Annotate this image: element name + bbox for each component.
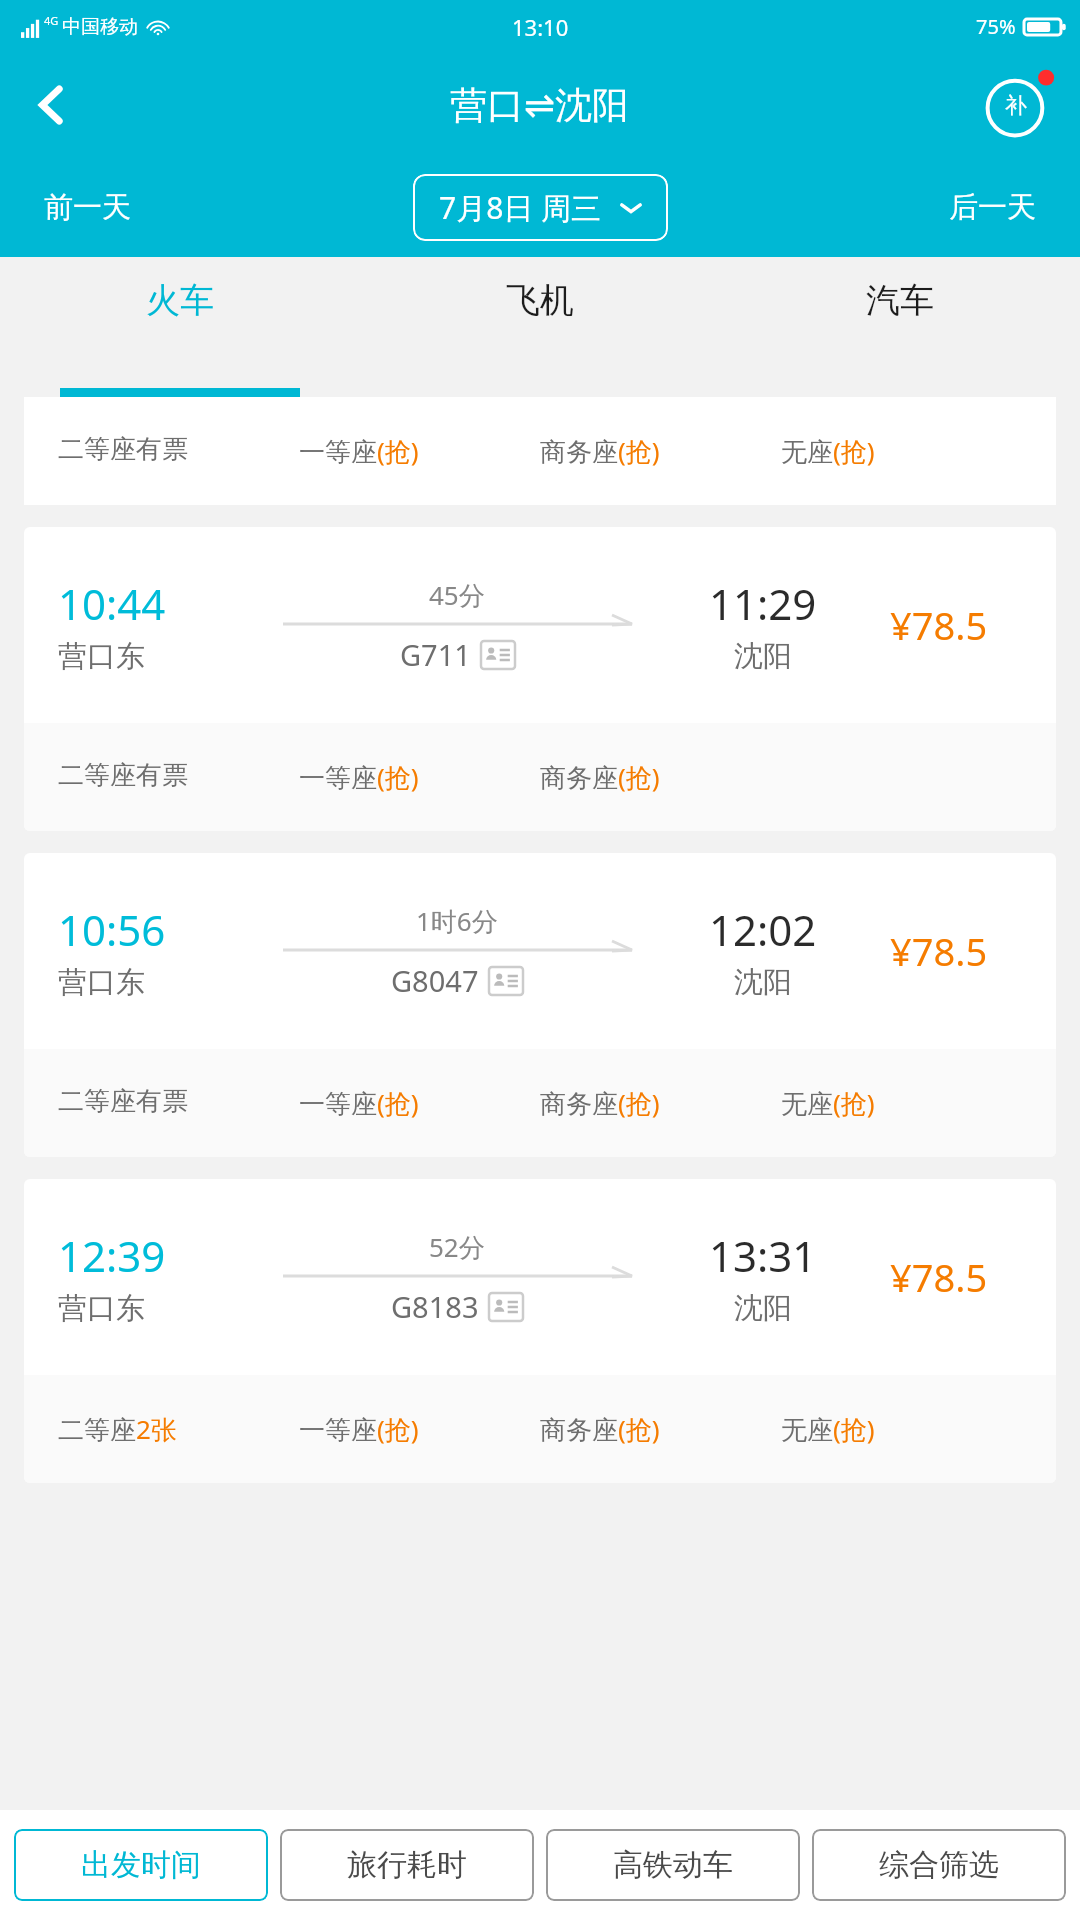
staticText: 75% <box>976 13 1016 40</box>
staticText: 沈阳 <box>734 1290 792 1327</box>
button[interactable]: 综合筛选 <box>812 1829 1066 1901</box>
staticText: 1时6分 <box>416 903 498 939</box>
button[interactable]: 火车 <box>0 257 360 397</box>
staticText: 火车 <box>146 279 214 322</box>
staticText: 综合筛选 <box>879 1846 999 1884</box>
staticText: 一等座(抢) <box>299 1411 419 1447</box>
staticText: 旅行耗时 <box>347 1846 467 1884</box>
button[interactable]: 二等座有票 <box>24 397 1056 505</box>
staticText: 无座(抢) <box>781 433 875 469</box>
staticText: 12:02 <box>709 901 817 958</box>
staticText: 商务座(抢) <box>540 1411 660 1447</box>
staticText: ¥78.5 <box>890 599 988 651</box>
button[interactable]: 10:44 <box>24 527 1056 831</box>
staticText: 无座(抢) <box>781 1411 875 1447</box>
staticText: 13:31 <box>709 1227 817 1284</box>
staticText: ¥78.5 <box>890 1251 988 1303</box>
button[interactable]: 7月8日 周三 <box>413 174 668 241</box>
staticText: 4G <box>44 13 59 28</box>
staticText: 7月8日 周三 <box>439 187 602 228</box>
staticText: 10:44 <box>58 575 166 632</box>
staticText: 补 <box>1005 92 1027 120</box>
staticText: 45分 <box>429 577 485 613</box>
staticText: 一等座(抢) <box>299 433 419 469</box>
staticText: 二等座2张 <box>58 1411 177 1447</box>
staticText: 二等座有票 <box>58 433 188 466</box>
button[interactable]: 汽车 <box>720 257 1080 397</box>
staticText: ¥78.5 <box>890 925 988 977</box>
staticText: 商务座(抢) <box>540 433 660 469</box>
button[interactable]: 前一天 <box>0 169 175 246</box>
staticText: 商务座(抢) <box>540 1085 660 1121</box>
staticText: 营口东 <box>58 964 145 1001</box>
staticText: 52分 <box>429 1229 485 1265</box>
staticText: 13:10 <box>512 12 569 42</box>
button[interactable]: 10:56 <box>24 853 1056 1157</box>
button[interactable]: 补票 <box>980 67 1056 143</box>
staticText: 出发时间 <box>81 1846 201 1884</box>
button[interactable]: Back <box>0 53 104 157</box>
staticText: 汽车 <box>866 279 934 322</box>
staticText: 商务座(抢) <box>540 759 660 795</box>
staticText: 高铁动车 <box>613 1846 733 1884</box>
staticText: 营口东 <box>58 638 145 675</box>
button[interactable]: 旅行耗时 <box>280 1829 534 1901</box>
staticText: 10:56 <box>58 901 166 958</box>
staticText: 一等座(抢) <box>299 1085 419 1121</box>
staticText: 营口⇌沈阳 <box>450 82 630 129</box>
staticText: G8183 <box>391 1287 479 1326</box>
staticText: 12:39 <box>58 1227 166 1284</box>
staticText: 飞机 <box>506 279 574 322</box>
button[interactable]: 12:39 <box>24 1179 1056 1483</box>
staticText: 营口东 <box>58 1290 145 1327</box>
button[interactable]: 飞机 <box>360 257 720 397</box>
button[interactable]: 出发时间 <box>14 1829 268 1901</box>
button[interactable]: 高铁动车 <box>546 1829 800 1901</box>
staticText: 沈阳 <box>734 638 792 675</box>
staticText: 无座(抢) <box>781 1085 875 1121</box>
staticText: 二等座有票 <box>58 759 188 792</box>
staticText: 中国移动 <box>62 15 138 39</box>
staticText: G711 <box>400 635 471 674</box>
staticText: G8047 <box>391 961 479 1000</box>
staticText: 一等座(抢) <box>299 759 419 795</box>
button[interactable]: 后一天 <box>905 169 1080 246</box>
staticText: 二等座有票 <box>58 1085 188 1118</box>
staticText: 沈阳 <box>734 964 792 1001</box>
staticText: 11:29 <box>709 575 817 632</box>
